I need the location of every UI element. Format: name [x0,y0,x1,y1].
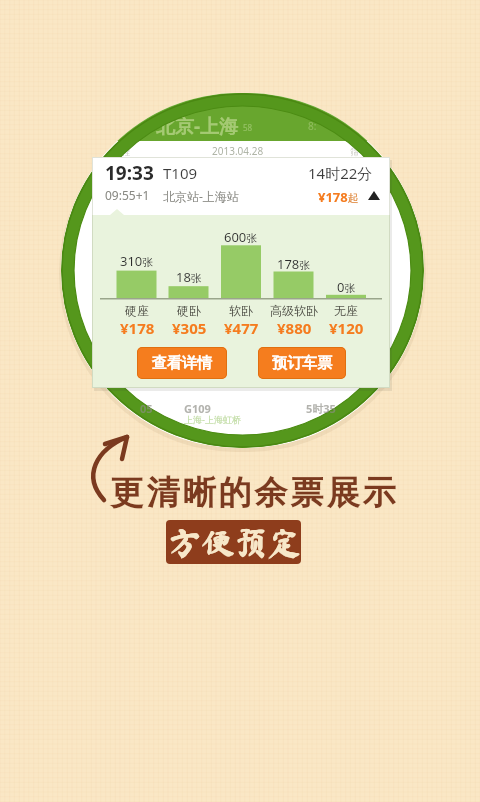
staticText: 2013.04.28 [212,144,264,158]
staticText: 查看详情 [152,354,212,373]
staticText: T109 [163,163,198,183]
staticText: 0张 [337,278,356,296]
staticText: 178张 [277,255,311,273]
staticText: ¥120 [329,318,364,338]
staticText: 更清晰的余票展示 [109,472,397,514]
staticText: 8: [308,119,317,133]
staticText: 方便预定 [168,526,300,559]
staticText: 58 [243,122,253,133]
staticText: 预订车票 [272,354,332,373]
staticText: 硬座 [125,303,149,318]
staticText: 硬卧 [177,303,201,318]
staticText: 筛 选 [350,145,371,157]
staticText: ¥178 [120,318,155,338]
staticText: G109 [184,401,211,416]
staticText: 北京-上海 [156,113,239,139]
staticText: ¥305 [172,318,207,338]
staticText: 09:55+1 [105,187,150,203]
staticText: 软卧 [229,303,253,318]
staticText: ¥880 [277,318,312,338]
button[interactable]: 预订车票 [258,347,346,379]
staticText: 方便预定 [169,526,301,559]
staticText: 单 程 [110,145,131,157]
button[interactable]: 方便预定 [166,520,301,564]
button[interactable]: 查看详情 [137,347,227,379]
staticText: 19:33 [105,160,154,186]
staticText: 高级软卧 [270,303,318,318]
staticText: ¥477 [224,318,259,338]
staticText: 无座 [334,303,358,318]
staticText: 方便预定 [168,527,300,560]
staticText: 310张 [120,252,154,270]
staticText: 5时35 [306,401,336,416]
staticText: 上海-上海虹桥 [184,413,241,425]
staticText: ¥178起 [318,188,359,206]
staticText: 18张 [176,268,202,286]
staticText: 600张 [224,228,258,246]
staticText: 14时22分 [308,163,373,183]
staticText: 05 [140,401,153,416]
staticText: 北京站-上海站 [163,188,239,204]
